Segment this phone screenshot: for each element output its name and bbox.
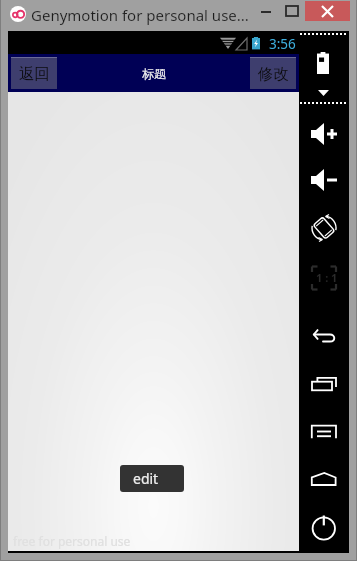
button[interactable]: Scale 1 to 1	[308, 262, 340, 294]
staticText: Genymotion for personal use...	[31, 5, 249, 25]
button[interactable]: 修改	[250, 57, 296, 89]
button[interactable]: Back	[308, 322, 340, 354]
button[interactable]: Volume up	[308, 118, 340, 150]
button[interactable]: Recent apps	[308, 370, 340, 402]
button[interactable]: Close	[305, 1, 350, 21]
button[interactable]: edit	[120, 465, 184, 492]
staticText: edit	[133, 469, 159, 488]
staticText: 3:56	[269, 35, 296, 53]
button[interactable]: Minimize	[253, 0, 279, 22]
staticText: 1 : 1	[316, 270, 338, 285]
button[interactable]: Power	[308, 512, 340, 544]
button[interactable]: Volume down	[308, 164, 340, 196]
staticText: 标题	[142, 66, 166, 81]
button[interactable]: 返回	[11, 57, 57, 89]
button[interactable]: Menu	[308, 416, 340, 448]
staticText: 返回	[19, 64, 50, 84]
staticText: free for personal use	[13, 533, 131, 549]
button[interactable]: Rotate screen	[308, 212, 340, 244]
button[interactable]: Maximize	[279, 0, 305, 22]
button[interactable]: Home	[308, 463, 340, 495]
staticText: 修改	[258, 64, 289, 84]
